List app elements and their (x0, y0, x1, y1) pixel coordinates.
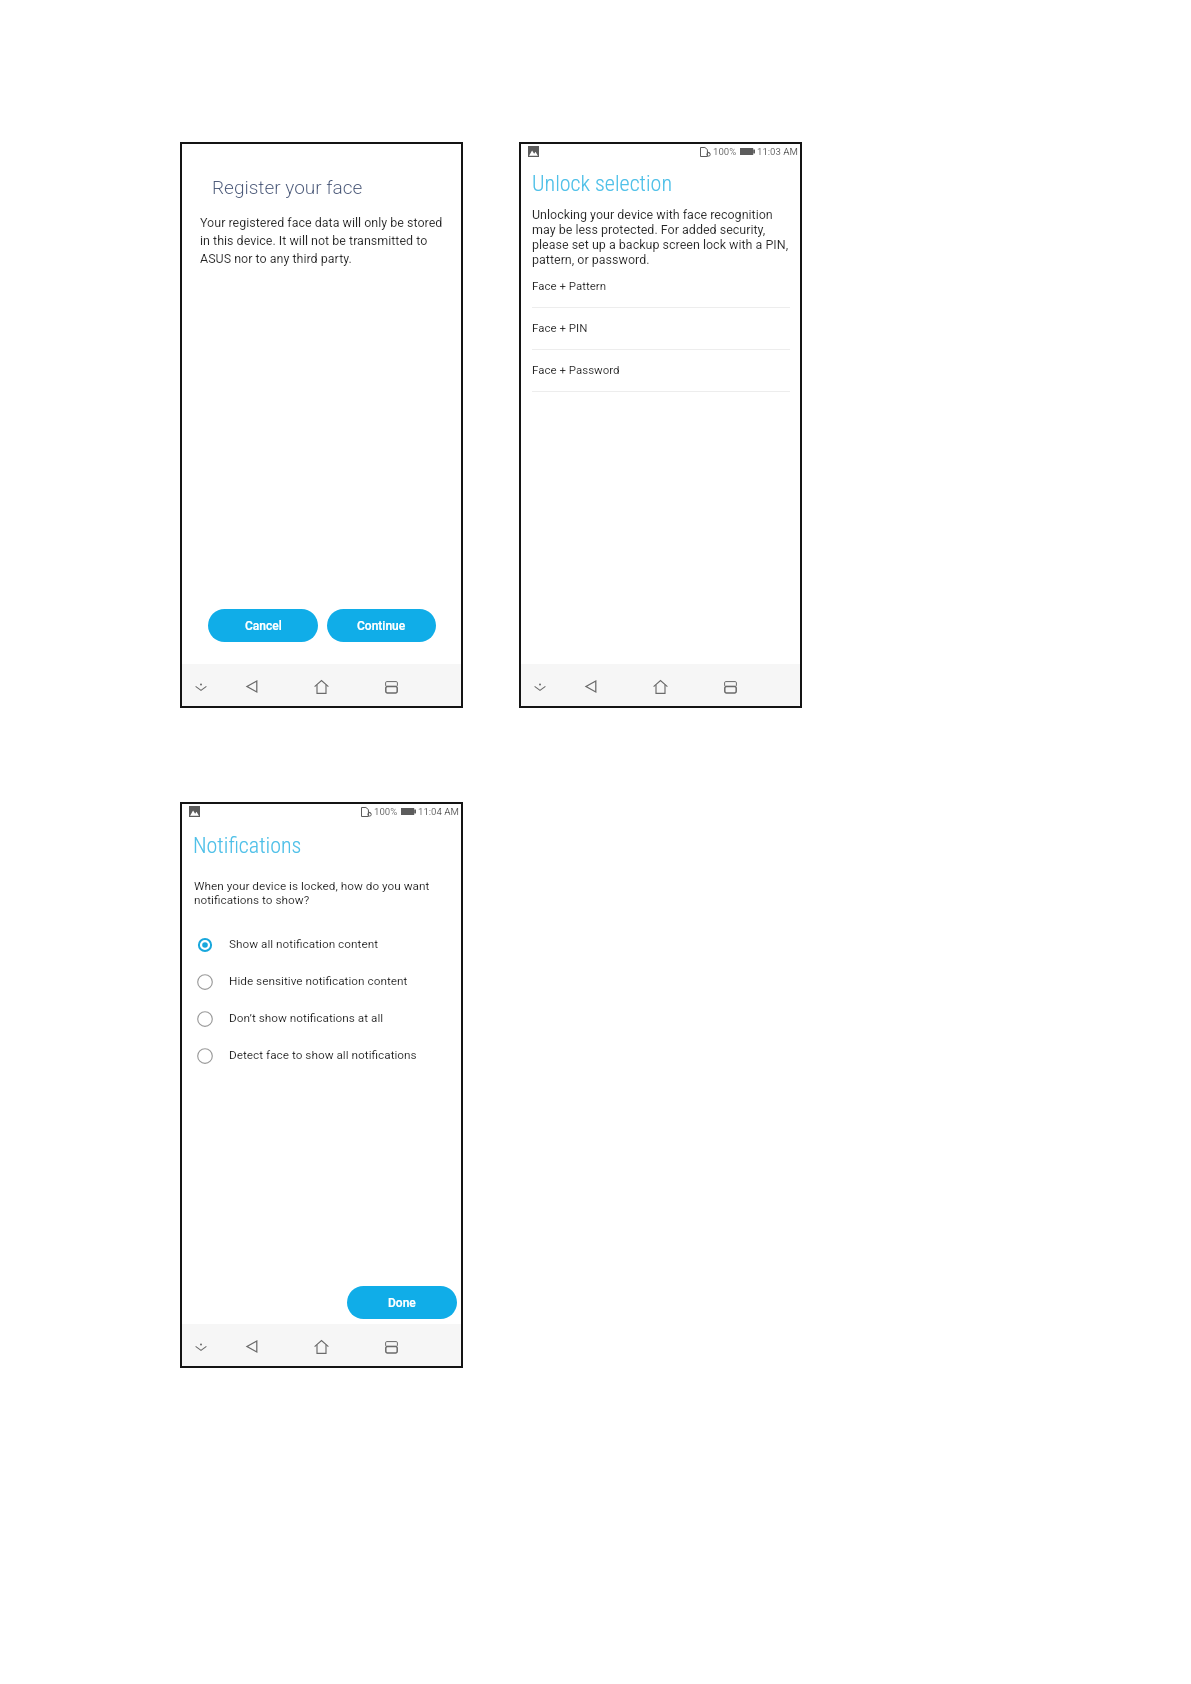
button[interactable]: Back (578, 674, 603, 699)
button[interactable]: Home (309, 674, 334, 699)
staticText: Face + Pattern (532, 280, 607, 293)
staticText: Face + Password (532, 364, 620, 377)
button[interactable]: Hide sensitive notification content (181, 963, 462, 1000)
button[interactable]: Hide keyboard (527, 674, 552, 699)
button[interactable]: Back (239, 674, 264, 699)
button[interactable]: Detect face to show all notifications (181, 1037, 462, 1074)
button[interactable]: Face + PIN (520, 308, 801, 350)
button[interactable]: Done (347, 1286, 457, 1319)
staticText: Notifications (193, 833, 302, 859)
staticText: Register your face (212, 176, 363, 198)
staticText: Unlock selection (532, 171, 673, 197)
button[interactable]: Back (239, 1334, 264, 1359)
button[interactable]: Recent apps (718, 674, 743, 699)
staticText: Detect face to show all notifications (229, 1049, 417, 1062)
button[interactable]: Cancel (208, 609, 318, 642)
button[interactable]: Home (648, 674, 673, 699)
staticText: Hide sensitive notification content (229, 975, 408, 988)
button[interactable]: Recent apps (379, 674, 404, 699)
staticText: Show all notification content (229, 938, 379, 951)
staticText: Face + PIN (532, 322, 588, 335)
button[interactable]: Hide keyboard (188, 1334, 213, 1359)
button[interactable]: Home (309, 1334, 334, 1359)
staticText: 11:04 AM (418, 806, 459, 817)
button[interactable]: Hide keyboard (188, 674, 213, 699)
staticText: 11:03 AM (757, 146, 798, 157)
staticText: Done (388, 1296, 416, 1310)
staticText: Unlocking your device with face recognit… (532, 208, 792, 268)
button[interactable]: Continue (327, 609, 436, 642)
button[interactable]: Face + Pattern (520, 266, 801, 308)
staticText: 100% (713, 146, 737, 157)
button[interactable]: Show all notification content (181, 926, 462, 963)
button[interactable]: Don’t show notifications at all (181, 1000, 462, 1037)
staticText: When your device is locked, how do you w… (194, 879, 444, 907)
button[interactable]: Recent apps (379, 1334, 404, 1359)
staticText: Cancel (245, 619, 282, 633)
staticText: Don’t show notifications at all (229, 1012, 384, 1025)
staticText: Continue (357, 619, 406, 633)
staticText: 100% (374, 806, 398, 817)
staticText: Your registered face data will only be s… (200, 213, 450, 267)
button[interactable]: Face + Password (520, 350, 801, 392)
